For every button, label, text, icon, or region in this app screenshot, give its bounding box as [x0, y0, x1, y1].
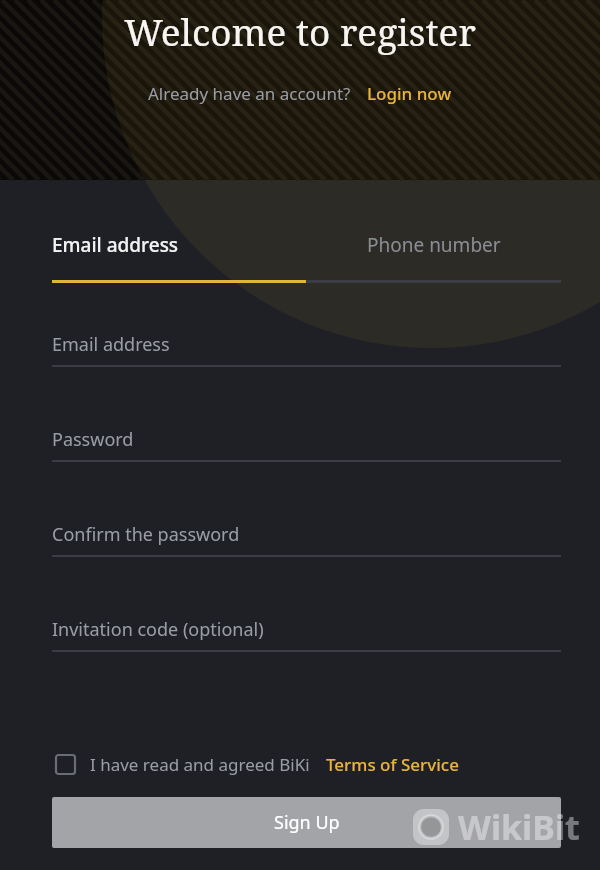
staticText: Invitation code (optional) — [52, 617, 264, 642]
button[interactable]: Invitation code (optional) — [52, 615, 561, 710]
button[interactable]: Sign Up — [52, 797, 561, 848]
staticText: Email address — [52, 332, 170, 357]
staticText: WikiBit — [458, 804, 580, 850]
button[interactable]: Phone number — [306, 232, 561, 280]
staticText: Login now — [367, 82, 452, 105]
button[interactable]: Confirm the password — [52, 520, 561, 615]
staticText: Terms of Service — [326, 753, 459, 776]
button[interactable]: Agree to terms checkbox — [52, 751, 78, 777]
staticText: Welcome to register — [124, 6, 476, 56]
staticText: Password — [52, 427, 134, 452]
button[interactable]: Email address — [52, 330, 561, 425]
button[interactable]: Password — [52, 425, 561, 520]
staticText: Already have an account? — [148, 82, 351, 105]
staticText: I have read and agreed BiKi — [90, 753, 310, 776]
button[interactable]: Login now — [367, 82, 452, 105]
staticText: Phone number — [367, 232, 501, 258]
button[interactable]: Email address — [52, 232, 306, 280]
staticText: Sign Up — [274, 810, 340, 835]
staticText: Confirm the password — [52, 522, 240, 547]
staticText: Email address — [52, 232, 179, 258]
button[interactable]: Terms of Service — [326, 753, 459, 776]
